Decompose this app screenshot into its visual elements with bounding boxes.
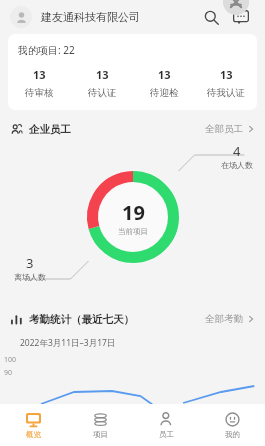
button[interactable]: 全部员工 (205, 123, 255, 135)
staticText: 3 (26, 254, 34, 272)
button[interactable]: 19 (85, 169, 181, 265)
staticText: 我的项目: 22 (18, 43, 75, 57)
button[interactable]: 概览 (0, 406, 67, 444)
staticText: 项目 (93, 430, 108, 439)
staticText: 概览 (26, 430, 41, 439)
staticText: 建友通科技有限公司 (41, 10, 140, 24)
staticText: 全部考勤 (205, 313, 243, 325)
staticText: 90 (4, 368, 13, 378)
button[interactable]: 我的项目: 22 (8, 34, 257, 110)
button[interactable]: Messages (229, 5, 253, 29)
staticText: 企业员工 (29, 123, 71, 136)
button[interactable]: 13 (8, 67, 71, 99)
button[interactable]: 项目 (67, 406, 133, 444)
staticText: 我的 (225, 430, 240, 439)
staticText: 19 (122, 199, 145, 226)
button[interactable]: Profile (10, 6, 32, 28)
staticText: 在场人数 (221, 160, 253, 170)
staticText: 100 (4, 355, 17, 365)
staticText: 13 (96, 67, 109, 82)
staticText: 考勤统计（最近七天） (29, 313, 134, 326)
button[interactable]: 全部考勤 (205, 313, 255, 325)
button[interactable]: 我的 (199, 406, 265, 444)
button[interactable]: 员工 (133, 406, 199, 444)
staticText: 2022年3月11日–3月17日 (20, 337, 116, 349)
button[interactable]: 13 (195, 67, 257, 99)
button[interactable]: Search (199, 5, 223, 29)
button[interactable]: 13 (71, 67, 133, 99)
staticText: 当前项目 (118, 227, 148, 236)
staticText: 待认证 (88, 87, 117, 99)
staticText: 离场人数 (14, 272, 46, 282)
button[interactable]: 13 (133, 67, 195, 99)
staticText: 4 (233, 142, 241, 160)
staticText: 13 (158, 67, 171, 82)
staticText: 待迎检 (150, 87, 179, 99)
staticText: 员工 (159, 430, 174, 439)
button[interactable]: Close (223, 0, 249, 15)
staticText: 待审核 (25, 87, 54, 99)
staticText: 13 (220, 67, 233, 82)
staticText: 全部员工 (205, 123, 243, 135)
staticText: 13 (33, 67, 46, 82)
staticText: 待我认证 (207, 87, 245, 99)
